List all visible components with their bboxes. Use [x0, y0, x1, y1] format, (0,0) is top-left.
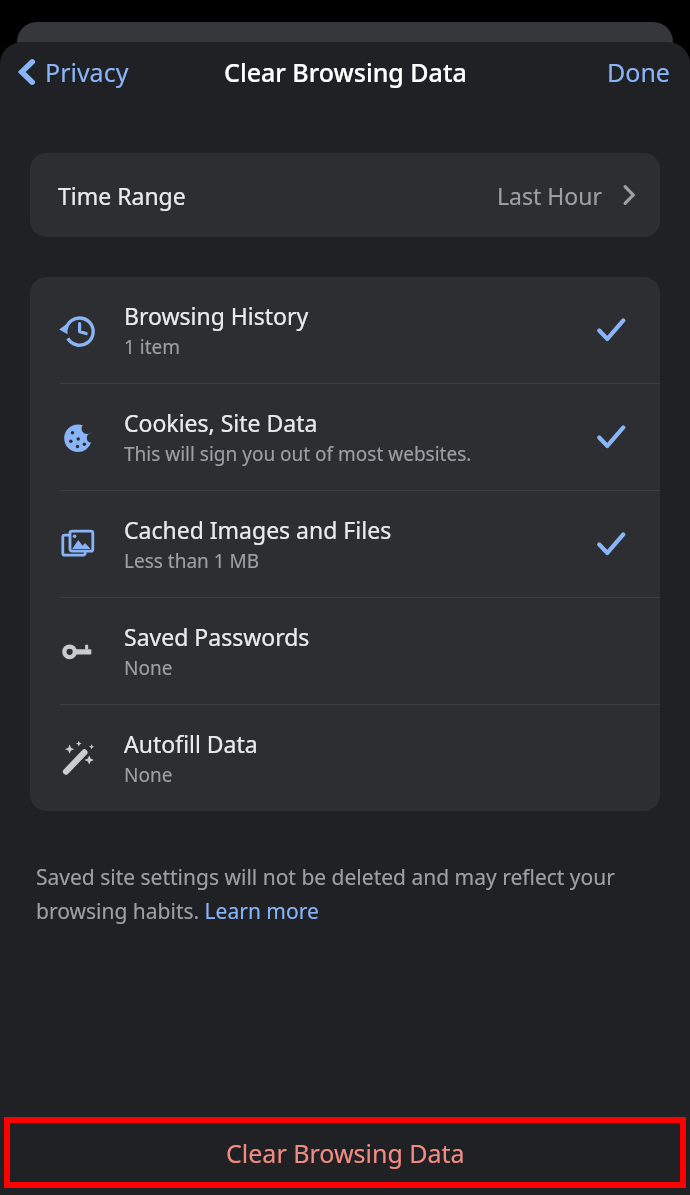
staticText: Saved site settings will not be deleted … — [36, 863, 640, 925]
staticText: This will sign you out of most websites. — [124, 441, 472, 467]
button[interactable]: Time Range — [30, 153, 660, 237]
staticText: Clear Browsing Data — [224, 55, 467, 89]
staticText: Autofill Data — [124, 728, 258, 759]
other: Selected — [597, 423, 625, 451]
button[interactable]: Browsing History — [30, 277, 660, 383]
staticText: Cookies, Site Data — [124, 407, 318, 438]
button[interactable]: Cached Images and Files — [30, 491, 660, 597]
staticText: Saved Passwords — [124, 621, 310, 652]
staticText: Time Range — [58, 180, 186, 211]
staticText: Clear Browsing Data — [226, 1136, 465, 1170]
other: Selected — [597, 530, 625, 558]
staticText: 1 item — [124, 334, 181, 360]
staticText: None — [124, 655, 173, 681]
button[interactable]: Saved site settings will not be deleted … — [36, 863, 640, 925]
staticText: Cached Images and Files — [124, 514, 392, 545]
button[interactable]: Cookies, Site Data — [30, 384, 660, 490]
staticText: Less than 1 MB — [124, 548, 260, 574]
button[interactable]: Done — [599, 49, 678, 95]
button[interactable]: Saved Passwords — [30, 598, 660, 704]
staticText: Browsing History — [124, 300, 309, 331]
button[interactable]: Privacy — [8, 49, 137, 95]
staticText: Privacy — [45, 55, 129, 89]
button[interactable]: Clear Browsing Data — [4, 1117, 686, 1188]
staticText: Done — [607, 55, 670, 89]
button[interactable]: Autofill Data — [30, 705, 660, 811]
other: Selected — [597, 316, 625, 344]
staticText: Last Hour — [497, 180, 602, 211]
staticText: None — [124, 762, 173, 788]
